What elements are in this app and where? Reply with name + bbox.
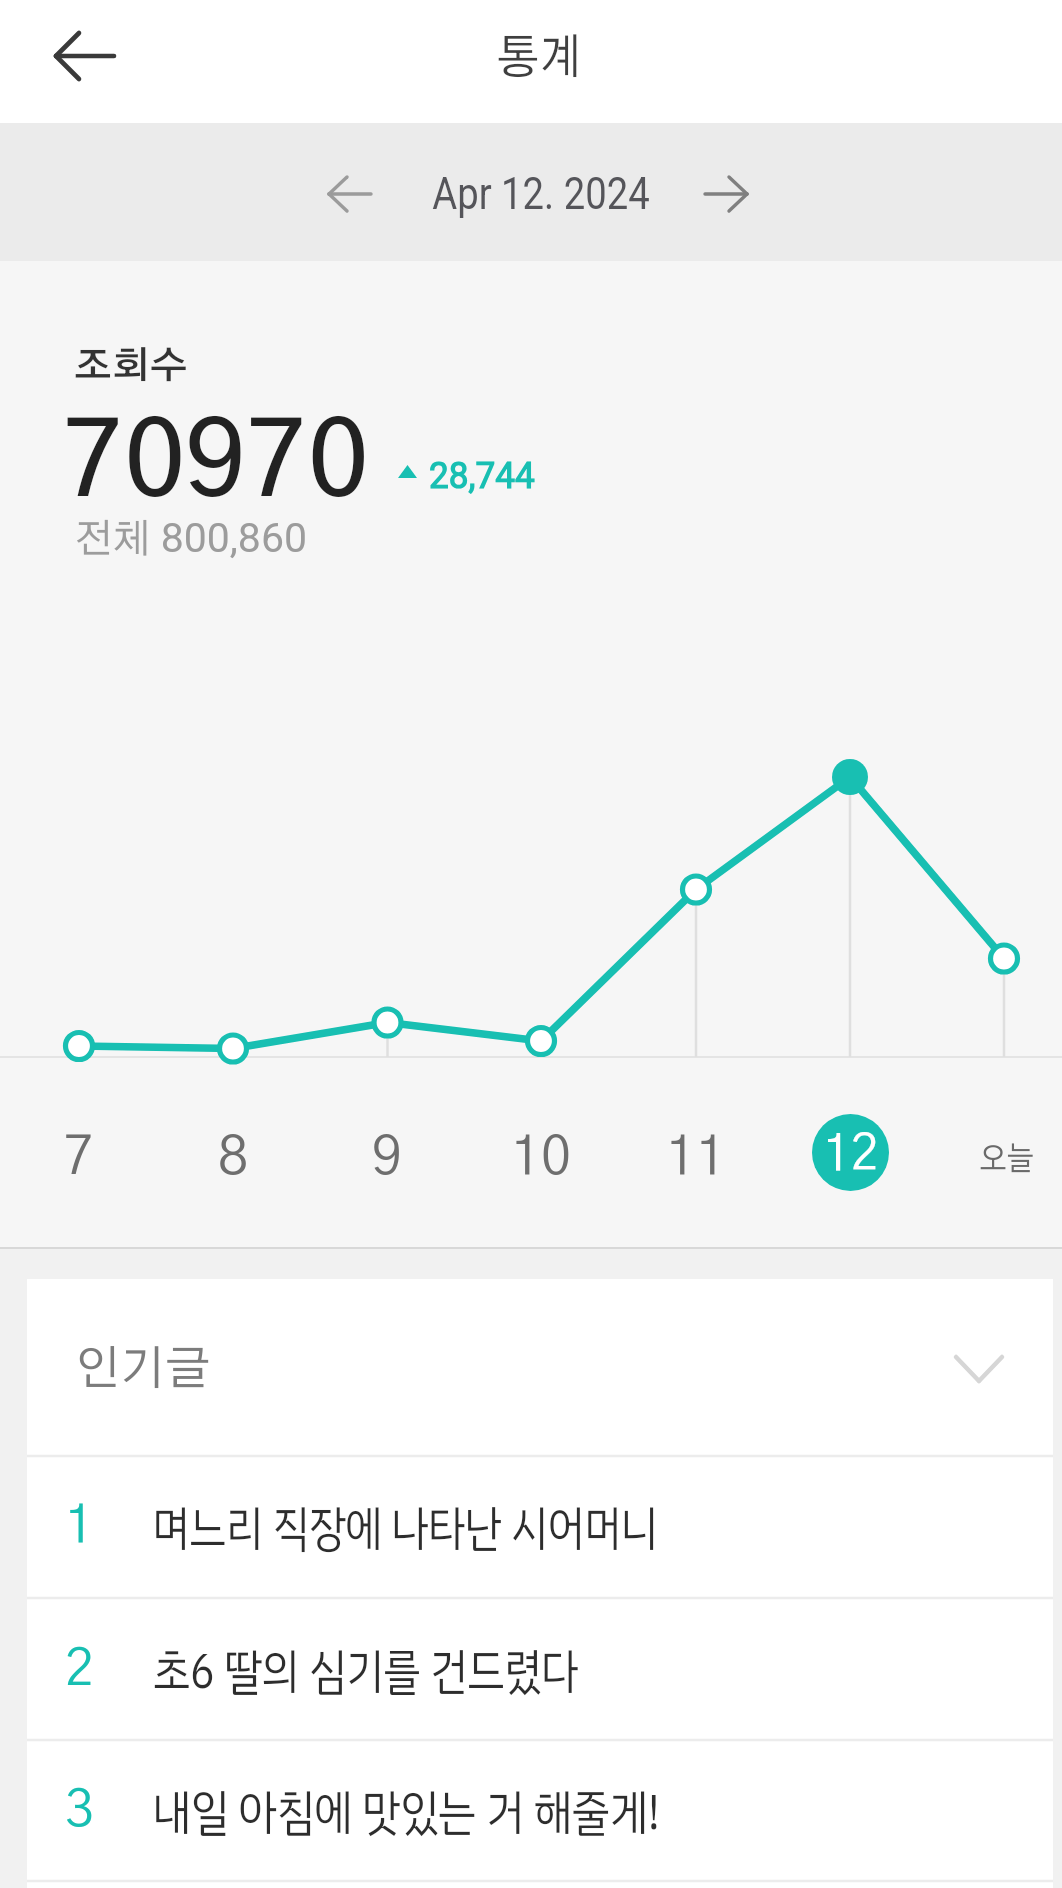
- staticText: 70970: [63, 412, 370, 516]
- button[interactable]: [27, 1281, 1053, 1456]
- button[interactable]: [27, 1598, 1053, 1740]
- staticText: 전체 800,860: [74, 514, 307, 562]
- button[interactable]: [27, 1456, 1053, 1598]
- staticText: 8: [218, 1131, 249, 1185]
- button[interactable]: [310, 155, 390, 233]
- button[interactable]: [686, 155, 766, 233]
- staticText: 며느리 직장에 나타난 시어머니: [153, 1492, 658, 1566]
- staticText: Apr 12. 2024: [432, 167, 650, 220]
- staticText: 조회수: [74, 348, 188, 385]
- staticText: 28,744: [429, 454, 535, 497]
- button[interactable]: [27, 1740, 1053, 1882]
- staticText: 10: [511, 1131, 572, 1185]
- staticText: 12: [823, 1130, 879, 1180]
- staticText: 인기글: [75, 1347, 211, 1394]
- staticText: 3: [65, 1785, 94, 1837]
- staticText: 통계: [497, 35, 582, 83]
- staticText: 1: [65, 1501, 94, 1553]
- button[interactable]: 12: [812, 1114, 889, 1191]
- staticText: 9: [372, 1131, 403, 1185]
- staticText: 초6 딸의 심기를 건드렸다: [153, 1635, 579, 1709]
- staticText: 2: [65, 1644, 94, 1696]
- button[interactable]: [30, 16, 140, 96]
- staticText: 11: [666, 1131, 727, 1185]
- staticText: 7: [64, 1131, 95, 1185]
- staticText: 오늘: [979, 1144, 1034, 1177]
- staticText: 내일 아침에 맛있는 거 해줄게!: [153, 1776, 660, 1850]
